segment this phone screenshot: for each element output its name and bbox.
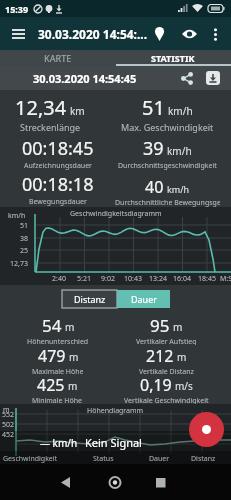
- button[interactable]: STATISTIK: [115, 50, 231, 66]
- staticText: 25: [20, 246, 29, 256]
- staticText: Geschwindigkeit: [3, 454, 58, 464]
- staticText: km/h: [167, 183, 190, 195]
- button[interactable]: [154, 464, 231, 500]
- staticText: 51: [20, 221, 29, 231]
- staticText: 38: [20, 234, 29, 244]
- staticText: m: [3, 405, 10, 415]
- staticText: Kein Signal: [85, 435, 142, 450]
- staticText: m: [173, 320, 183, 334]
- staticText: 479: [38, 345, 66, 367]
- button[interactable]: [77, 464, 154, 500]
- staticText: 212: [146, 345, 174, 367]
- staticText: Höhenunterschied: [27, 337, 89, 345]
- staticText: km/h: [167, 144, 192, 158]
- staticText: Aufzeichnungsdauer: [24, 161, 92, 171]
- staticText: km/h: [8, 211, 26, 221]
- staticText: 5:21: [77, 274, 91, 284]
- staticText: Maximale Höhe: [32, 367, 84, 374]
- staticText: 9:02: [101, 274, 115, 284]
- staticText: STATISTIK: [151, 52, 195, 64]
- button[interactable]: [148, 23, 170, 45]
- staticText: 00:18:45: [22, 136, 94, 161]
- staticText: 51: [142, 94, 165, 121]
- staticText: km/h: [168, 104, 193, 118]
- staticText: m: [65, 320, 75, 334]
- button[interactable]: [177, 68, 197, 88]
- staticText: Höhendiagramm: [87, 406, 144, 416]
- staticText: Vertikale Distanz: [139, 367, 194, 374]
- staticText: Status: [93, 454, 114, 464]
- staticText: KARTE: [44, 52, 72, 64]
- staticText: Dauer: [149, 454, 170, 464]
- staticText: 12,34: [15, 94, 67, 121]
- staticText: km: [70, 104, 85, 118]
- staticText: Bewegungsdauer: [29, 197, 87, 207]
- staticText: 15:39: [5, 3, 29, 15]
- staticText: 30.03.2020 14:54:45: [33, 71, 137, 86]
- button[interactable]: KARTE: [0, 50, 115, 66]
- staticText: m: [68, 379, 78, 393]
- staticText: m/s: [175, 379, 193, 393]
- staticText: 452: [2, 430, 15, 440]
- staticText: 30.03.2020 14:54:...: [38, 26, 148, 42]
- staticText: 552: [2, 410, 15, 420]
- staticText: Streckenlänge: [20, 121, 81, 133]
- staticText: Minimale Höhe: [32, 396, 83, 404]
- staticText: M:S: [220, 274, 231, 284]
- staticText: 00:18:18: [22, 172, 94, 197]
- button[interactable]: [189, 412, 224, 447]
- staticText: 18:45: [198, 274, 216, 284]
- staticText: 10:43: [124, 274, 142, 284]
- staticText: 425: [37, 374, 65, 396]
- staticText: 39: [143, 136, 164, 161]
- staticText: 54: [42, 314, 62, 337]
- staticText: Geschwindigkeitsdiagramm: [70, 209, 162, 219]
- staticText: Distanz: [74, 293, 106, 305]
- staticText: Dauer: [131, 293, 157, 305]
- staticText: 12,73: [10, 259, 28, 269]
- staticText: Distanz: [191, 454, 216, 464]
- staticText: 502: [2, 420, 15, 430]
- staticText: 40: [145, 176, 164, 198]
- staticText: 0,19: [140, 374, 172, 396]
- staticText: Max. Geschwindigkeit: [121, 121, 214, 133]
- button[interactable]: Distanz: [62, 290, 117, 308]
- staticText: Durchschnittliche Bewegungsgeschwind: [115, 198, 220, 207]
- button[interactable]: [203, 68, 223, 88]
- button[interactable]: [178, 23, 200, 45]
- staticText: 16:04: [173, 274, 191, 284]
- button[interactable]: [208, 26, 223, 42]
- staticText: m: [69, 350, 79, 364]
- staticText: — km/h: [40, 436, 78, 450]
- button[interactable]: [0, 464, 77, 500]
- staticText: Vertikale Geschwindigkeit: [124, 396, 209, 404]
- staticText: 95: [150, 314, 170, 337]
- staticText: 13:24: [149, 274, 167, 284]
- button[interactable]: Dauer: [117, 290, 170, 308]
- button[interactable]: [8, 24, 28, 44]
- staticText: m: [177, 350, 187, 364]
- staticText: 2:40: [52, 274, 66, 284]
- staticText: Vertikaler Aufstieg: [136, 337, 197, 345]
- staticText: Durchschnittsgeschwindigkeit: [118, 161, 217, 171]
